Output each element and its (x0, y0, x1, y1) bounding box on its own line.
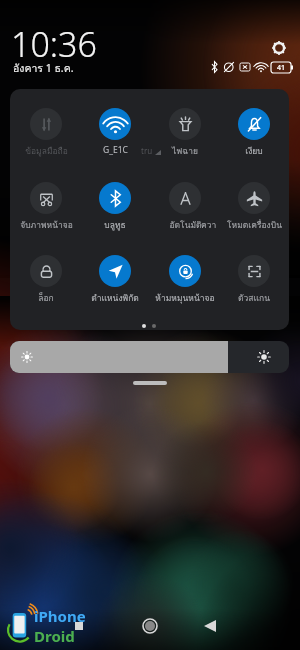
staticText: 10:36 (11, 21, 97, 67)
staticText: ตัวสแกน (238, 291, 270, 305)
button[interactable]: บลูทูธ (80, 182, 150, 232)
staticText: tru (141, 145, 153, 156)
button[interactable]: ล็อก (11, 255, 81, 305)
staticText: ตำแหน่งพิกัด (91, 291, 139, 305)
staticText: G_E1C (103, 144, 128, 156)
staticText: บลูทูธ (104, 218, 126, 232)
button[interactable]: อัตโนมัติ (150, 182, 220, 232)
staticText: ไฟฉาย (172, 144, 198, 158)
staticText: อังคาร 1 ธ.ค. (13, 60, 74, 77)
staticText: โหมดเครื่องบิน (227, 218, 282, 232)
button[interactable]: เงียบ (219, 108, 289, 158)
staticText: จับภาพหน้าจอ (20, 218, 73, 232)
button[interactable]: G_E1C (80, 108, 150, 156)
button[interactable]: ตำแหน่งพิกัด (80, 255, 150, 305)
button[interactable]: โหมดเครื่องบิน (219, 182, 289, 232)
staticText: 41 (277, 63, 286, 73)
button[interactable]: ข้อมูลมือถือ (11, 108, 81, 158)
button[interactable]: Home (140, 616, 160, 636)
button[interactable]: Recents (72, 619, 86, 633)
staticText: ควา (201, 218, 217, 232)
button[interactable]: Back (201, 617, 219, 635)
staticText: iPhone (34, 606, 86, 626)
staticText: ข้อมูลมือถือ (25, 144, 68, 158)
button[interactable]: ห้ามหมุนหน้าจอ (150, 255, 220, 305)
button[interactable]: Settings (268, 37, 290, 59)
staticText: อัตโนมัติ (169, 218, 202, 232)
button[interactable]: ไฟฉาย (150, 108, 220, 158)
staticText: ล็อก (38, 291, 54, 305)
staticText: เงียบ (245, 144, 263, 158)
staticText: ห้ามหมุนหน้าจอ (155, 291, 215, 305)
button[interactable]: Brightness (10, 341, 289, 373)
button[interactable]: ตัวสแกน (219, 255, 289, 305)
staticText: Droid (34, 626, 75, 646)
button[interactable]: จับภาพหน้าจอ (11, 182, 81, 232)
